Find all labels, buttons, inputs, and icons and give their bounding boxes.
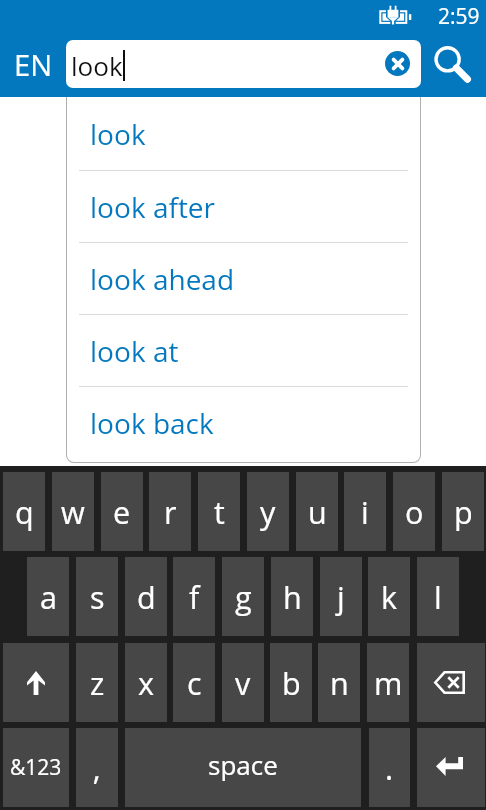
staticText: z	[90, 662, 105, 704]
button[interactable]: x	[125, 643, 167, 722]
button[interactable]: Enter	[417, 728, 485, 807]
button[interactable]: look back	[67, 387, 420, 459]
button[interactable]: .	[369, 728, 410, 807]
button[interactable]: m	[367, 643, 409, 722]
button[interactable]: Space	[125, 728, 361, 807]
staticText: space	[208, 747, 278, 782]
button[interactable]: z	[76, 643, 118, 722]
staticText: d	[137, 576, 156, 618]
staticText: w	[61, 491, 85, 533]
button[interactable]: t	[198, 472, 240, 551]
button[interactable]: EN	[0, 40, 66, 88]
button[interactable]: &123	[3, 728, 69, 807]
button[interactable]: Clear text	[385, 51, 410, 76]
button[interactable]: l	[417, 557, 459, 636]
button[interactable]: look at	[67, 315, 420, 387]
button[interactable]: d	[125, 557, 167, 636]
staticText: y	[260, 491, 276, 533]
staticText: k	[381, 576, 398, 618]
button[interactable]: n	[318, 643, 360, 722]
staticText: g	[235, 576, 252, 618]
staticText: j	[337, 576, 345, 618]
button[interactable]: s	[76, 557, 118, 636]
button[interactable]: k	[368, 557, 410, 636]
button[interactable]: f	[173, 557, 215, 636]
staticText: t	[214, 491, 225, 533]
button[interactable]: look ahead	[67, 243, 420, 315]
staticText: e	[113, 491, 131, 533]
button[interactable]: a	[27, 557, 69, 636]
staticText: b	[282, 662, 301, 704]
staticText: &123	[10, 753, 62, 782]
staticText: m	[374, 662, 403, 704]
staticText: look at	[90, 332, 179, 370]
staticText: EN	[14, 45, 52, 84]
staticText: x	[138, 662, 154, 704]
staticText: look after	[90, 188, 215, 226]
button[interactable]: b	[270, 643, 312, 722]
button[interactable]: Shift	[3, 643, 69, 722]
staticText: r	[164, 491, 177, 533]
button[interactable]: o	[393, 472, 435, 551]
staticText: .	[385, 747, 394, 789]
staticText: look	[71, 48, 123, 83]
staticText: 2:59	[438, 2, 480, 31]
staticText: n	[330, 662, 349, 704]
button[interactable]: j	[320, 557, 362, 636]
button[interactable]: q	[3, 472, 45, 551]
staticText: q	[15, 491, 34, 533]
staticText: p	[454, 491, 473, 533]
staticText: c	[187, 662, 202, 704]
staticText: i	[361, 491, 369, 533]
button[interactable]: c	[173, 643, 215, 722]
button[interactable]: i	[344, 472, 386, 551]
button[interactable]: v	[222, 643, 264, 722]
button[interactable]: look	[66, 40, 421, 88]
button[interactable]: look	[67, 97, 420, 171]
staticText: look ahead	[90, 260, 235, 298]
staticText: look	[90, 115, 146, 153]
button[interactable]: g	[222, 557, 264, 636]
staticText: l	[434, 576, 442, 618]
button[interactable]: r	[149, 472, 191, 551]
staticText: a	[40, 576, 57, 618]
button[interactable]: y	[247, 472, 289, 551]
other: Battery charging	[377, 3, 415, 27]
button[interactable]: w	[52, 472, 94, 551]
button[interactable]: e	[101, 472, 143, 551]
staticText: o	[405, 491, 424, 533]
button[interactable]: ,	[76, 728, 118, 807]
button[interactable]: Search	[426, 40, 486, 88]
staticText: s	[90, 576, 105, 618]
button[interactable]: look after	[67, 171, 420, 243]
staticText: ,	[93, 747, 101, 789]
button[interactable]: u	[296, 472, 338, 551]
staticText: look back	[90, 404, 214, 442]
staticText: h	[283, 576, 302, 618]
staticText: f	[189, 576, 200, 618]
staticText: u	[308, 491, 327, 533]
button[interactable]: p	[442, 472, 484, 551]
button[interactable]: Backspace	[417, 643, 485, 722]
staticText: v	[235, 662, 251, 704]
button[interactable]: h	[271, 557, 313, 636]
